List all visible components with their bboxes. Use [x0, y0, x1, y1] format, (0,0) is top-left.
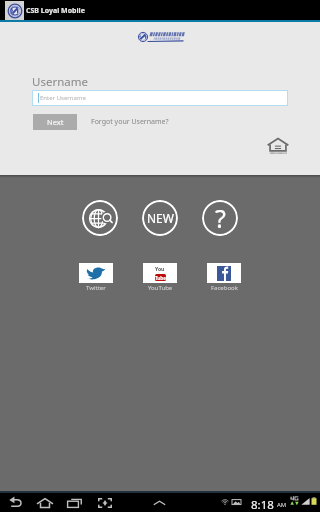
button[interactable]: Help	[202, 200, 238, 236]
button[interactable]: Show notifications	[152, 499, 166, 507]
staticText: Twitter	[86, 284, 106, 292]
staticText: CSB Loyal Mobile	[26, 6, 85, 16]
staticText: You	[155, 266, 165, 273]
button[interactable]: Home	[36, 496, 54, 509]
button[interactable]: You	[143, 263, 177, 292]
staticText: Facebook	[211, 284, 238, 292]
button[interactable]: Branch locator	[82, 200, 118, 236]
staticText: Enter Username	[40, 94, 86, 102]
button[interactable]: Facebook	[207, 263, 241, 292]
staticText: Username	[32, 74, 88, 90]
button[interactable]: Back	[7, 496, 23, 509]
button[interactable]: Forgot your Username?	[91, 117, 169, 127]
staticText: ?	[215, 201, 226, 235]
staticText: Tube	[155, 275, 166, 281]
button[interactable]: Screenshot	[97, 496, 113, 509]
button[interactable]: CSB Loyal Mobile	[26, 6, 85, 16]
button[interactable]: Twitter	[79, 263, 113, 292]
button[interactable]: Next	[33, 114, 77, 130]
button[interactable]: App icon	[5, 1, 24, 20]
staticText: 8:18	[251, 497, 274, 512]
staticText: Next	[47, 117, 64, 127]
staticText: YouTube	[148, 284, 173, 292]
button[interactable]: Enter Username	[32, 90, 288, 106]
staticText: AM	[277, 501, 287, 509]
button[interactable]: What's new	[142, 200, 178, 236]
staticText: Forgot your Username?	[91, 117, 169, 127]
staticText: NEW	[147, 210, 174, 226]
button[interactable]: Recent apps	[66, 496, 83, 509]
